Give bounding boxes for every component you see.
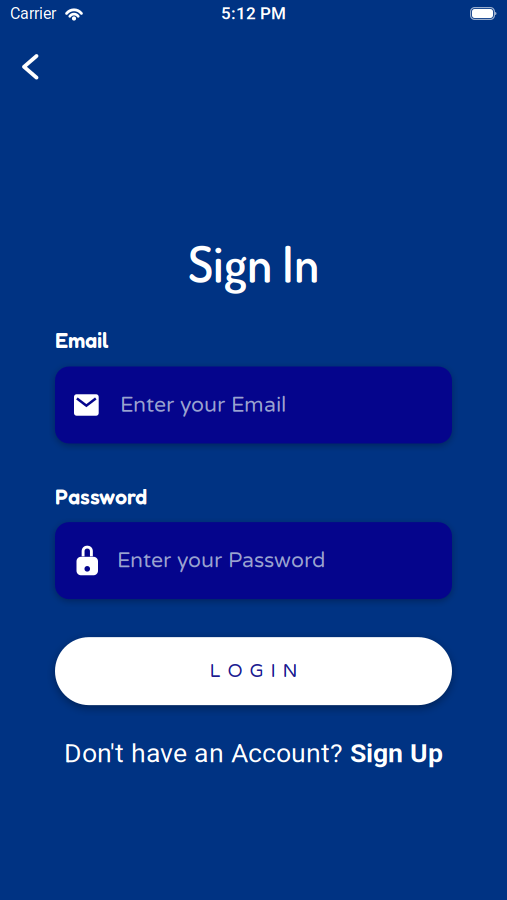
staticText: Password [55, 483, 147, 510]
staticText: 5:12 PM [221, 3, 286, 23]
button[interactable]: Enter your Password [55, 522, 452, 599]
staticText: Sign Up [350, 738, 443, 769]
staticText: LOGIN [209, 660, 297, 682]
staticText: Carrier [10, 4, 56, 23]
staticText: Enter your Password [117, 548, 325, 573]
button[interactable]: LOGIN [55, 637, 452, 705]
button[interactable]: Sign Up [350, 738, 443, 769]
button[interactable]: Enter your Email [55, 366, 452, 443]
button[interactable] [22, 54, 39, 80]
staticText: Enter your Email [120, 392, 286, 418]
staticText: Don't have an Account? [64, 738, 350, 769]
staticText: Sign In [188, 232, 319, 294]
staticText: Email [55, 327, 109, 353]
